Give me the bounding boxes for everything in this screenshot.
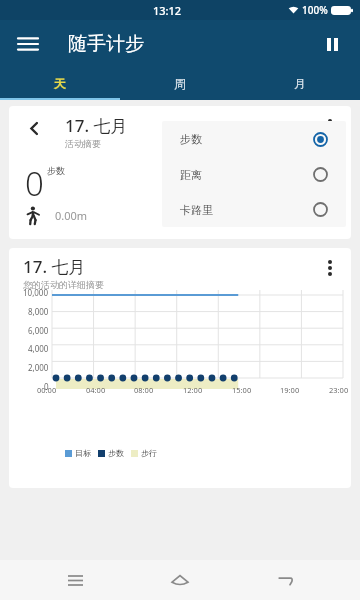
button[interactable]: Back bbox=[23, 117, 45, 139]
staticText: 您的活动的详细摘要 bbox=[23, 279, 104, 290]
staticText: 00:00 bbox=[37, 385, 57, 395]
staticText: 天 bbox=[54, 76, 66, 91]
staticText: 目标 bbox=[75, 448, 91, 458]
staticText: 19:00 bbox=[280, 385, 300, 395]
staticText: 周 bbox=[174, 76, 186, 91]
staticText: 步行 bbox=[141, 448, 157, 458]
button[interactable]: 天 bbox=[0, 68, 120, 98]
button[interactable]: More options bbox=[317, 255, 343, 281]
button[interactable]: Menu bbox=[10, 26, 46, 62]
button[interactable]: Pause bbox=[314, 26, 350, 62]
staticText: 8,000 bbox=[28, 306, 49, 317]
staticText: 0.00m bbox=[55, 208, 88, 223]
button[interactable]: 卡路里 bbox=[162, 192, 346, 227]
staticText: 17. 七月 bbox=[65, 114, 128, 137]
staticText: 活动摘要 bbox=[65, 138, 101, 149]
button[interactable]: Home bbox=[163, 563, 197, 597]
staticText: 08:00 bbox=[134, 385, 154, 395]
button[interactable]: Recents bbox=[58, 563, 92, 597]
button[interactable]: 步数 bbox=[162, 121, 346, 157]
staticText: 2,000 bbox=[28, 362, 49, 373]
button[interactable]: 月 bbox=[240, 68, 360, 98]
staticText: 04:00 bbox=[86, 385, 106, 395]
staticText: 17. 七月 bbox=[23, 255, 86, 278]
staticText: 12:00 bbox=[183, 385, 203, 395]
staticText: 距离 bbox=[180, 168, 202, 182]
staticText: 0.00卡 bbox=[190, 208, 223, 223]
staticText: 13:12 bbox=[153, 3, 182, 18]
staticText: 6,000 bbox=[28, 325, 49, 336]
staticText: 步数 bbox=[108, 448, 124, 458]
staticText: 10,000 bbox=[23, 287, 49, 298]
staticText: 0 bbox=[44, 381, 49, 392]
staticText: 4,000 bbox=[28, 343, 49, 354]
button[interactable]: 距离 bbox=[162, 157, 346, 192]
staticText: 步数 bbox=[47, 165, 65, 176]
staticText: 卡路里 bbox=[180, 203, 213, 217]
staticText: 100% bbox=[302, 3, 328, 17]
staticText: 月 bbox=[294, 76, 306, 91]
button[interactable]: 周 bbox=[120, 68, 240, 98]
staticText: 23:00 bbox=[329, 385, 349, 395]
staticText: 步数 bbox=[180, 132, 202, 146]
staticText: 15:00 bbox=[232, 385, 252, 395]
button[interactable]: Back bbox=[268, 563, 302, 597]
button[interactable]: More options bbox=[317, 114, 343, 140]
staticText: 0 bbox=[25, 161, 44, 206]
staticText: 随手计步 bbox=[68, 32, 144, 56]
